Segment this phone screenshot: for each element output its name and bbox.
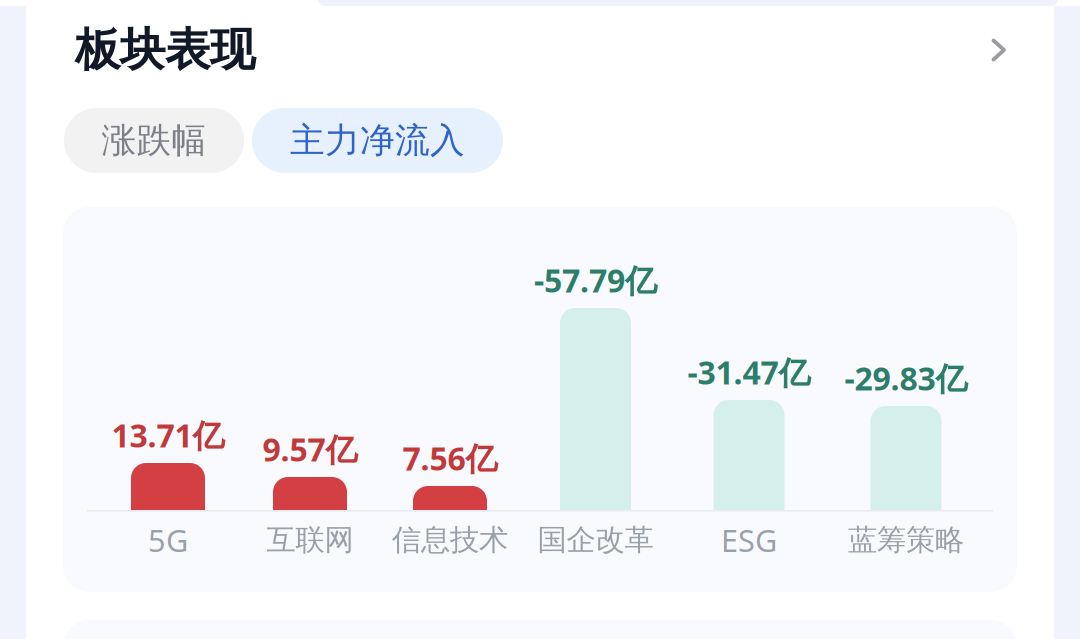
- staticText: -29.83亿: [844, 357, 967, 399]
- button[interactable]: 主力净流入: [252, 108, 503, 173]
- staticText: 5G: [148, 520, 188, 560]
- staticText: 互联网: [266, 522, 353, 558]
- staticText: ESG: [721, 520, 777, 560]
- staticText: 涨跌幅: [101, 119, 206, 162]
- staticText: 13.71亿: [111, 414, 224, 456]
- staticText: 7.56亿: [402, 437, 497, 479]
- staticText: -57.79亿: [534, 259, 657, 301]
- staticText: -31.47亿: [687, 351, 810, 393]
- staticText: 主力净流入: [290, 119, 465, 162]
- button[interactable]: 信息技术 7.56亿: [385, 226, 515, 556]
- button[interactable]: ESG -31.47亿: [684, 226, 814, 556]
- button[interactable]: 板块表现: [75, 19, 1007, 81]
- button[interactable]: 涨跌幅: [64, 108, 244, 173]
- staticText: 国企改革: [537, 522, 653, 558]
- button[interactable]: 蓝筹策略 -29.83亿: [841, 226, 971, 556]
- button[interactable]: 5G 13.71亿: [103, 226, 233, 556]
- button[interactable]: 国企改革 -57.79亿: [530, 226, 660, 556]
- staticText: 信息技术: [392, 522, 508, 558]
- staticText: 蓝筹策略: [848, 522, 964, 558]
- staticText: 9.57亿: [262, 428, 357, 470]
- button[interactable]: 互联网 9.57亿: [245, 226, 375, 556]
- staticText: 板块表现: [75, 22, 255, 78]
